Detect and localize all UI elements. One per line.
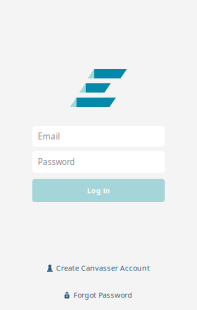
staticText: Log in — [87, 185, 110, 195]
staticText: Email — [38, 131, 60, 142]
button[interactable]: Create Canvasser Account — [37, 258, 160, 278]
button[interactable]: Log in — [32, 179, 165, 202]
staticText: Forgot Password — [73, 290, 132, 300]
staticText: Password — [38, 156, 75, 167]
staticText: Create Canvasser Account — [56, 263, 150, 273]
button[interactable]: Forgot Password — [55, 285, 142, 305]
